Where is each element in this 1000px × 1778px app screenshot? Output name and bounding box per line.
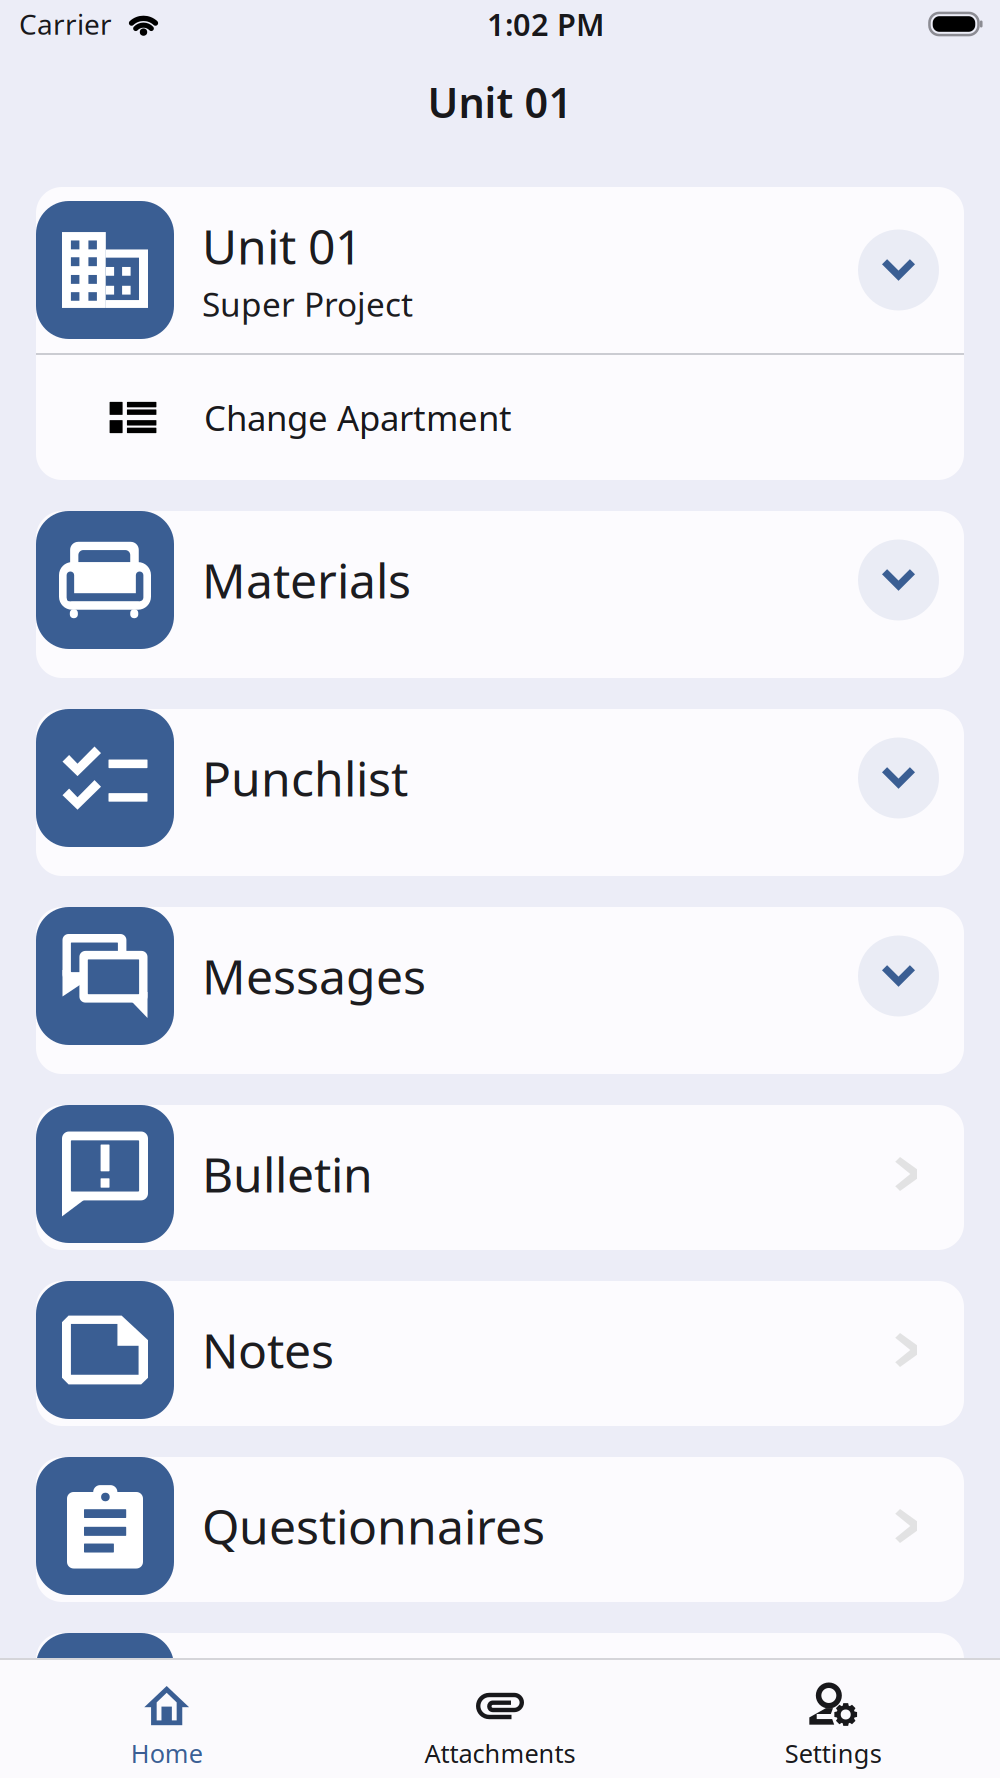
staticText: 1:02 PM (487, 4, 604, 44)
staticText: Super Project (202, 282, 413, 326)
button[interactable]: Punchlist (36, 709, 964, 876)
staticText: Home (131, 1736, 203, 1770)
staticText: Change Apartment (204, 394, 512, 440)
button[interactable]: Messages (36, 907, 964, 1074)
button[interactable]: Attachments (333, 1660, 667, 1778)
staticText: Unit 01 (202, 214, 362, 278)
button[interactable]: Notes (36, 1281, 964, 1426)
staticText: Attachments (424, 1736, 575, 1770)
staticText: Carrier (19, 5, 112, 43)
button[interactable]: Bulletin (36, 1105, 964, 1250)
button[interactable]: Documents (36, 1633, 964, 1778)
staticText: Punchlist (202, 746, 408, 810)
staticText: Messages (202, 944, 426, 1008)
staticText: Unit 01 (427, 75, 572, 129)
button[interactable]: Home (0, 1660, 333, 1778)
button[interactable]: Questionnaires (36, 1457, 964, 1602)
staticText: Settings (785, 1736, 882, 1770)
button[interactable]: Settings (667, 1660, 1000, 1778)
button[interactable]: Unit 01 (36, 187, 964, 353)
staticText: Bulletin (202, 1142, 373, 1206)
staticText: Materials (202, 548, 411, 612)
button[interactable]: Materials (36, 511, 964, 678)
staticText: Notes (202, 1318, 334, 1382)
button[interactable]: Change Apartment (36, 355, 964, 480)
staticText: Questionnaires (202, 1494, 545, 1558)
